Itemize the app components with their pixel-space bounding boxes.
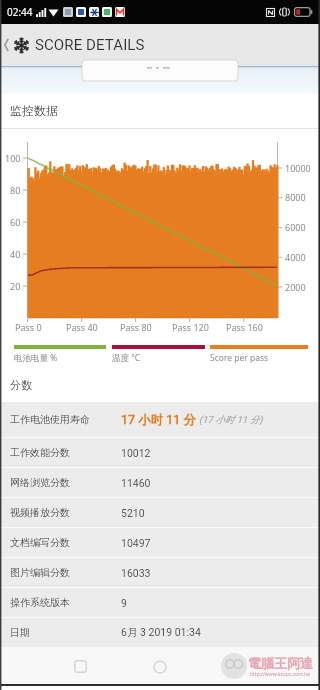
staticText: SCORE DETAILS xyxy=(35,36,145,54)
staticText: 40 xyxy=(10,248,21,260)
button[interactable]: 日期 xyxy=(0,618,320,647)
staticText: Pass 120 xyxy=(172,321,209,333)
button[interactable]: 文档编写分数 xyxy=(0,528,320,557)
staticText: 10012 xyxy=(121,447,151,459)
button[interactable]: 操作系统版本 xyxy=(0,588,320,617)
staticText: 6月 3 2019 01:34 xyxy=(121,626,201,639)
staticText: 操作系统版本 xyxy=(10,596,121,609)
staticText: 日期 xyxy=(10,626,121,639)
staticText: 2000 xyxy=(285,281,306,293)
button[interactable]: 工作效能分数 xyxy=(0,438,320,467)
staticText: 80 xyxy=(10,184,21,196)
button[interactable]: Recents xyxy=(67,647,93,686)
staticText: 16033 xyxy=(121,567,151,579)
staticText: 17 小时 11 分 xyxy=(121,412,196,428)
staticText: (17 小时 11 分) xyxy=(199,414,263,426)
staticText: 10000 xyxy=(285,162,311,174)
staticText: 工作电池使用寿命 xyxy=(10,413,121,426)
staticText: 10497 xyxy=(121,537,151,549)
staticText: 图片编辑分数 xyxy=(10,566,121,579)
staticText: 6000 xyxy=(285,221,306,233)
staticText: 100 xyxy=(5,152,21,164)
button[interactable]: 工作电池使用寿命 xyxy=(0,402,320,437)
button[interactable]: 图片编辑分数 xyxy=(0,558,320,587)
staticText: Pass 160 xyxy=(226,321,263,333)
staticText: 分数 xyxy=(10,378,32,392)
button[interactable]: Home xyxy=(147,647,173,686)
staticText: 電腦王阿達 xyxy=(248,655,313,671)
staticText: 温度 °C xyxy=(112,352,141,364)
staticText: 工作效能分数 xyxy=(10,446,121,459)
staticText: 电池电量 % xyxy=(14,352,58,364)
staticText: 02:44 xyxy=(7,5,33,19)
staticText: Pass 80 xyxy=(120,321,152,333)
staticText: 20 xyxy=(10,280,21,292)
staticText: 4000 xyxy=(285,251,306,263)
staticText: Score per pass xyxy=(210,352,269,364)
staticText: http://www.kocpc.com.tw xyxy=(250,671,310,678)
staticText: 60 xyxy=(10,216,21,228)
staticText: 8000 xyxy=(285,191,306,203)
staticText: 文档编写分数 xyxy=(10,536,121,549)
staticText: 11460 xyxy=(121,477,151,489)
staticText: 视频播放分数 xyxy=(10,506,121,519)
staticText: 监控数据 xyxy=(10,103,58,118)
button[interactable]: Back xyxy=(0,27,13,63)
staticText: 网络浏览分数 xyxy=(10,476,121,489)
staticText: 9 xyxy=(121,597,127,609)
staticText: Pass 0 xyxy=(15,321,42,333)
staticText: 5210 xyxy=(121,507,145,519)
button[interactable]: 网络浏览分数 xyxy=(0,468,320,497)
button[interactable]: 视频播放分数 xyxy=(0,498,320,527)
staticText: Pass 40 xyxy=(66,321,98,333)
